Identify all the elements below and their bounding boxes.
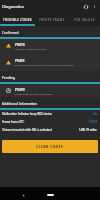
button[interactable]: Back [20, 192, 26, 198]
button[interactable]: TROUBLE CODES [0, 12, 35, 26]
staticText: FREEZE FRAME [39, 18, 65, 22]
staticText: Malfunction Indicator lamp (MIL) status [2, 112, 91, 116]
staticText: Confirmed [2, 30, 19, 34]
button[interactable]: FREEZE FRAME [35, 12, 69, 26]
staticText: On [93, 112, 97, 116]
button[interactable]: More options [90, 2, 98, 10]
staticText: Turbo/Super Charger Underboost [15, 92, 53, 95]
button[interactable]: Distance traveled while MIL is activated [0, 126, 100, 134]
button[interactable]: Home [47, 194, 54, 196]
button[interactable]: P0401 [0, 53, 100, 71]
staticText: PID VALUES [74, 18, 95, 22]
staticText: TROUBLE CODES [3, 18, 32, 22]
staticText: Pending [2, 75, 15, 79]
staticText: Distance traveled while MIL is activated [2, 128, 77, 132]
staticText: P0674 [89, 120, 97, 124]
button[interactable]: Freeze frame DTC [0, 118, 100, 126]
staticText: P0674 [15, 42, 25, 46]
staticText: P0299 [15, 87, 25, 91]
button[interactable]: PID VALUES [69, 12, 100, 26]
button[interactable]: P0674 [0, 39, 100, 52]
staticText: CLEAR CODES [36, 144, 64, 149]
staticText: Freeze frame DTC [2, 120, 87, 124]
staticText: Exhaust Gas Recirculation Flow Insuffici… [15, 63, 74, 66]
staticText: P0401 [15, 58, 25, 62]
button[interactable]: CLEAR CODES [2, 140, 98, 153]
staticText: Cylinder 4 Glow Plug Circuit [15, 47, 46, 50]
button[interactable]: P0299 [0, 84, 100, 97]
button[interactable]: Malfunction Indicator lamp (MIL) status [0, 110, 100, 118]
staticText: 1488.79 miles [79, 128, 97, 132]
staticText: Additional Information [2, 101, 38, 105]
button[interactable]: Refresh [81, 2, 90, 11]
staticText: Diagnostics [2, 4, 25, 9]
